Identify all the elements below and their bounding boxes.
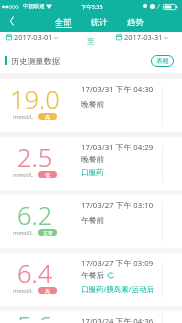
staticText: 晚餐前	[81, 99, 105, 109]
staticText: 17/03/24 下午 04:36	[81, 316, 154, 323]
staticText: 正常	[43, 230, 53, 236]
staticText: 全部	[55, 17, 72, 27]
button[interactable]: 6.2	[0, 195, 182, 248]
button[interactable]: 全部	[49, 13, 77, 32]
staticText: 2017-03-31	[124, 32, 163, 42]
staticText: 6.2	[17, 198, 53, 233]
button[interactable]: Back	[3, 13, 22, 32]
staticText: 晚餐前	[81, 154, 105, 164]
button[interactable]: 2017-03-01	[6, 32, 58, 42]
staticText: 午餐后	[81, 270, 105, 280]
staticText: 6.4	[17, 256, 53, 291]
staticText: 表格	[156, 57, 169, 65]
staticText: 中国联通	[23, 3, 45, 10]
staticText: 低	[45, 172, 50, 178]
button[interactable]: 2017-03-31	[116, 32, 168, 42]
staticText: 高	[45, 114, 50, 120]
staticText: 历史测量数据	[11, 56, 61, 66]
button[interactable]: 趋势	[121, 13, 149, 32]
button[interactable]: 表格	[151, 55, 174, 67]
staticText: mmol/L	[13, 171, 33, 178]
button[interactable]: 6.4	[0, 253, 182, 306]
staticText: 至	[87, 37, 95, 46]
staticText: 5.6	[17, 308, 53, 320]
button[interactable]: 5.6	[0, 311, 182, 323]
staticText: 19.0	[10, 82, 60, 117]
button[interactable]: 19.0	[0, 79, 182, 132]
staticText: 统计	[91, 17, 108, 27]
staticText: mmol/L	[13, 287, 33, 294]
button[interactable]: 统计	[85, 13, 113, 32]
staticText: 口服药/胰岛素/运动后	[81, 284, 155, 294]
staticText: 17/03/31 下午 04:29	[81, 142, 154, 153]
staticText: mmol/L	[13, 229, 33, 236]
staticText: 17/03/31 下午 04:30	[81, 84, 154, 95]
staticText: 下午5:35	[81, 3, 103, 10]
staticText: 17/03/27 下午 03:10	[81, 200, 154, 211]
staticText: 17/03/27 下午 03:09	[81, 258, 154, 269]
button[interactable]: 2.5	[0, 137, 182, 190]
staticText: 高	[45, 288, 50, 294]
staticText: 2.5	[17, 140, 53, 175]
staticText: 趋势	[127, 17, 144, 27]
staticText: 2017-03-01	[14, 32, 53, 42]
staticText: 口服药	[81, 168, 104, 177]
staticText: 午餐前	[81, 215, 105, 225]
staticText: mmol/L	[13, 113, 33, 120]
